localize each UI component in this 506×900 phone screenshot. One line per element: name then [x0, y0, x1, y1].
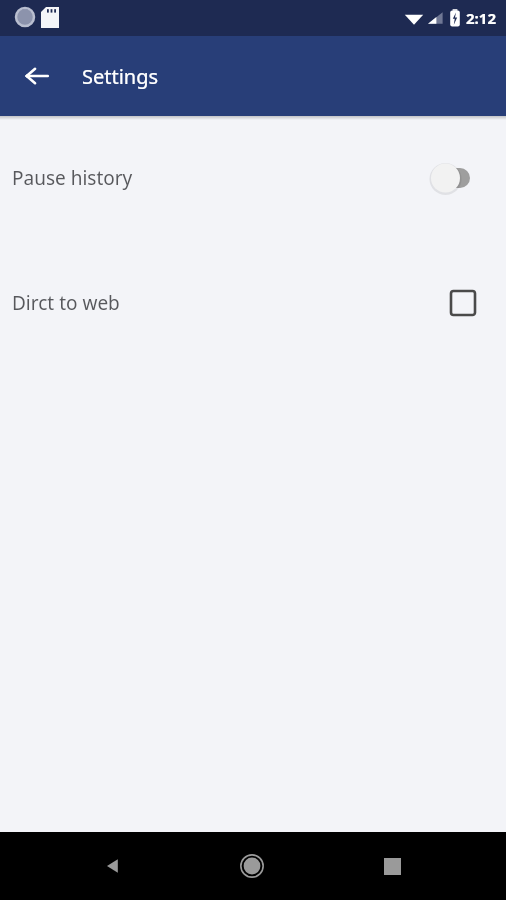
button[interactable]: Dirct to web: [0, 275, 506, 331]
staticText: Dirct to web: [12, 290, 120, 316]
button[interactable]: Pause history: [0, 150, 506, 206]
staticText: Pause history: [12, 165, 133, 191]
button[interactable]: Back: [87, 840, 139, 892]
staticText: 2:12: [466, 8, 496, 28]
button[interactable]: Recent apps: [366, 840, 418, 892]
staticText: Settings: [82, 63, 159, 90]
button[interactable]: Home: [226, 840, 278, 892]
button[interactable]: Back: [13, 52, 61, 100]
